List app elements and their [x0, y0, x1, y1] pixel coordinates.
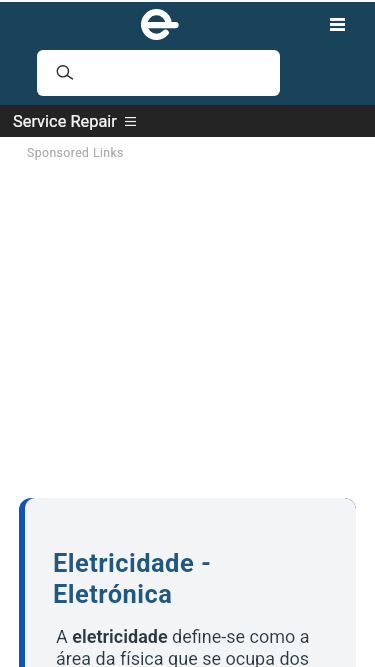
button[interactable]: Service Repair	[0, 105, 375, 137]
staticText: Eletricidade - Eletrónica	[53, 548, 212, 610]
staticText: Service Repair	[13, 112, 117, 131]
button[interactable]: Home	[141, 9, 179, 40]
staticText: A eletricidade define-se como a área da …	[56, 626, 320, 667]
button[interactable]: Eletricidade - Eletrónica	[19, 498, 356, 667]
button[interactable]: Menu	[322, 9, 353, 40]
button[interactable]: Search	[37, 50, 280, 96]
staticText: Sponsored Links	[27, 146, 124, 160]
